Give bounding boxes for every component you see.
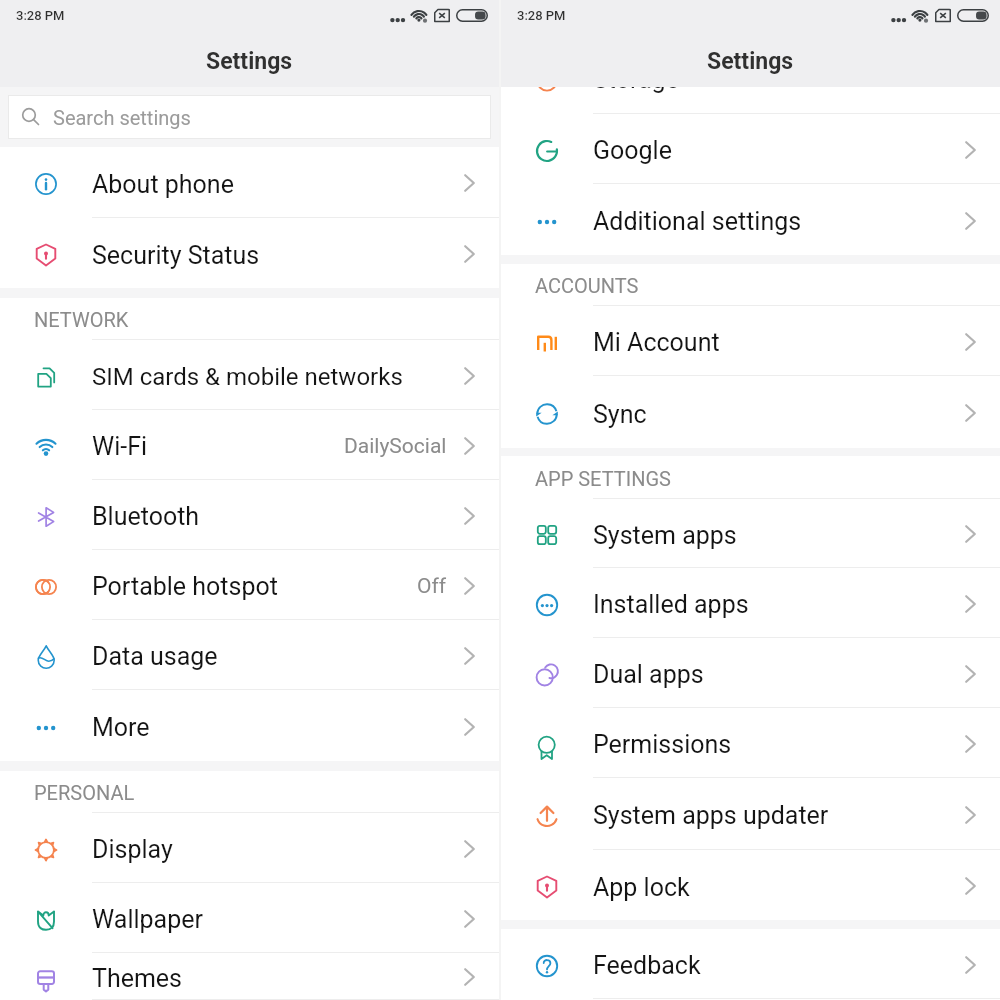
staticText: Wi-Fi [92, 432, 148, 461]
staticText: Portable hotspot [92, 572, 278, 601]
staticText: Search settings [53, 106, 191, 129]
staticText: More [92, 713, 150, 742]
button[interactable]: System apps [501, 499, 1000, 568]
staticText: Settings [206, 48, 293, 75]
staticText: ACCOUNTS [535, 274, 639, 297]
button[interactable]: App lock [501, 850, 1000, 920]
staticText: Bluetooth [92, 502, 200, 531]
staticText: NETWORK [34, 308, 129, 331]
staticText: System apps [593, 521, 737, 550]
staticText: Sync [593, 400, 647, 429]
staticText: PERSONAL [34, 781, 135, 804]
button[interactable]: Additional settings [501, 184, 1000, 255]
button[interactable]: Wi-Fi [0, 410, 499, 480]
staticText: Wallpaper [92, 905, 203, 934]
button[interactable]: Google [501, 114, 1000, 184]
button[interactable]: Mi Account [501, 306, 1000, 376]
staticText: Installed apps [593, 590, 749, 619]
staticText: Google [593, 136, 672, 165]
staticText: Additional settings [593, 207, 802, 236]
button[interactable]: System apps updater [501, 778, 1000, 850]
button[interactable]: Permissions [501, 708, 1000, 778]
button[interactable]: Storage [501, 87, 1000, 114]
button[interactable]: Display [0, 813, 499, 883]
staticText: SIM cards & mobile networks [92, 363, 403, 391]
button[interactable]: Themes [0, 953, 499, 1000]
staticText: Dual apps [593, 660, 704, 689]
staticText: Storage [593, 87, 679, 94]
button[interactable]: Feedback [501, 929, 1000, 999]
staticText: Themes [92, 964, 183, 993]
staticText: APP SETTINGS [535, 467, 671, 490]
staticText: DailySocial [344, 434, 447, 459]
button[interactable]: Data usage [0, 620, 499, 690]
button[interactable]: Installed apps [501, 568, 1000, 638]
button[interactable]: Bluetooth [0, 480, 499, 550]
staticText: Off [417, 574, 447, 599]
staticText: Permissions [593, 730, 732, 759]
button[interactable]: More [0, 690, 499, 761]
staticText: 3:28 PM [517, 8, 566, 23]
staticText: Security Status [92, 241, 260, 270]
button[interactable]: Wallpaper [0, 883, 499, 953]
button[interactable]: Sync [501, 376, 1000, 448]
button[interactable]: About phone [0, 147, 499, 218]
button[interactable]: Portable hotspot [0, 550, 499, 620]
button[interactable]: Search settings [8, 95, 491, 139]
button[interactable]: Security Status [0, 218, 499, 288]
button[interactable]: SIM cards & mobile networks [0, 340, 499, 410]
staticText: Feedback [593, 951, 701, 980]
staticText: Data usage [92, 642, 218, 671]
staticText: System apps updater [593, 801, 829, 830]
staticText: About phone [92, 170, 234, 199]
staticText: Display [92, 835, 173, 864]
staticText: App lock [593, 873, 690, 902]
button[interactable]: Dual apps [501, 638, 1000, 708]
staticText: Settings [707, 48, 794, 75]
staticText: 3:28 PM [16, 8, 65, 23]
staticText: Mi Account [593, 328, 720, 357]
